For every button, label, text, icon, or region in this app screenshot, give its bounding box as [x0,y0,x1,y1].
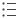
button[interactable]: Third item [0,14,19,17]
button[interactable]: Second item [0,8,19,11]
button[interactable]: First item [0,2,19,5]
